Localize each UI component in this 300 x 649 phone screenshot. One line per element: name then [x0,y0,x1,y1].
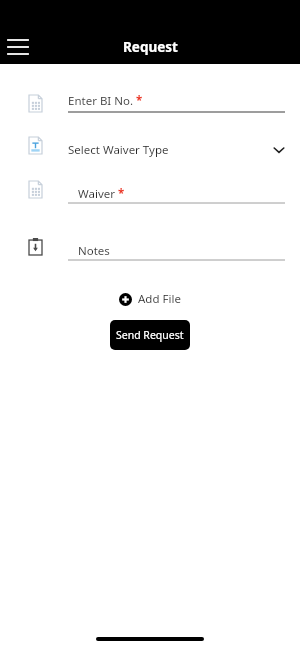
button[interactable]: Open navigation menu [0,29,36,65]
button[interactable]: Enter BI No. * [68,93,285,123]
button[interactable]: Select Waiver Type [68,135,285,165]
staticText: Enter BI No. * [68,93,143,109]
staticText: Waiver * [78,186,125,202]
staticText: Request [123,38,178,56]
button[interactable]: Notes [68,236,285,276]
button[interactable]: Waiver * [68,179,285,219]
staticText: Send Request [116,328,184,342]
staticText: Select Waiver Type [68,142,169,158]
button[interactable]: Add File [113,287,187,311]
staticText: Add File [138,291,181,307]
staticText: Notes [78,243,110,259]
button[interactable]: Send Request [110,320,190,350]
